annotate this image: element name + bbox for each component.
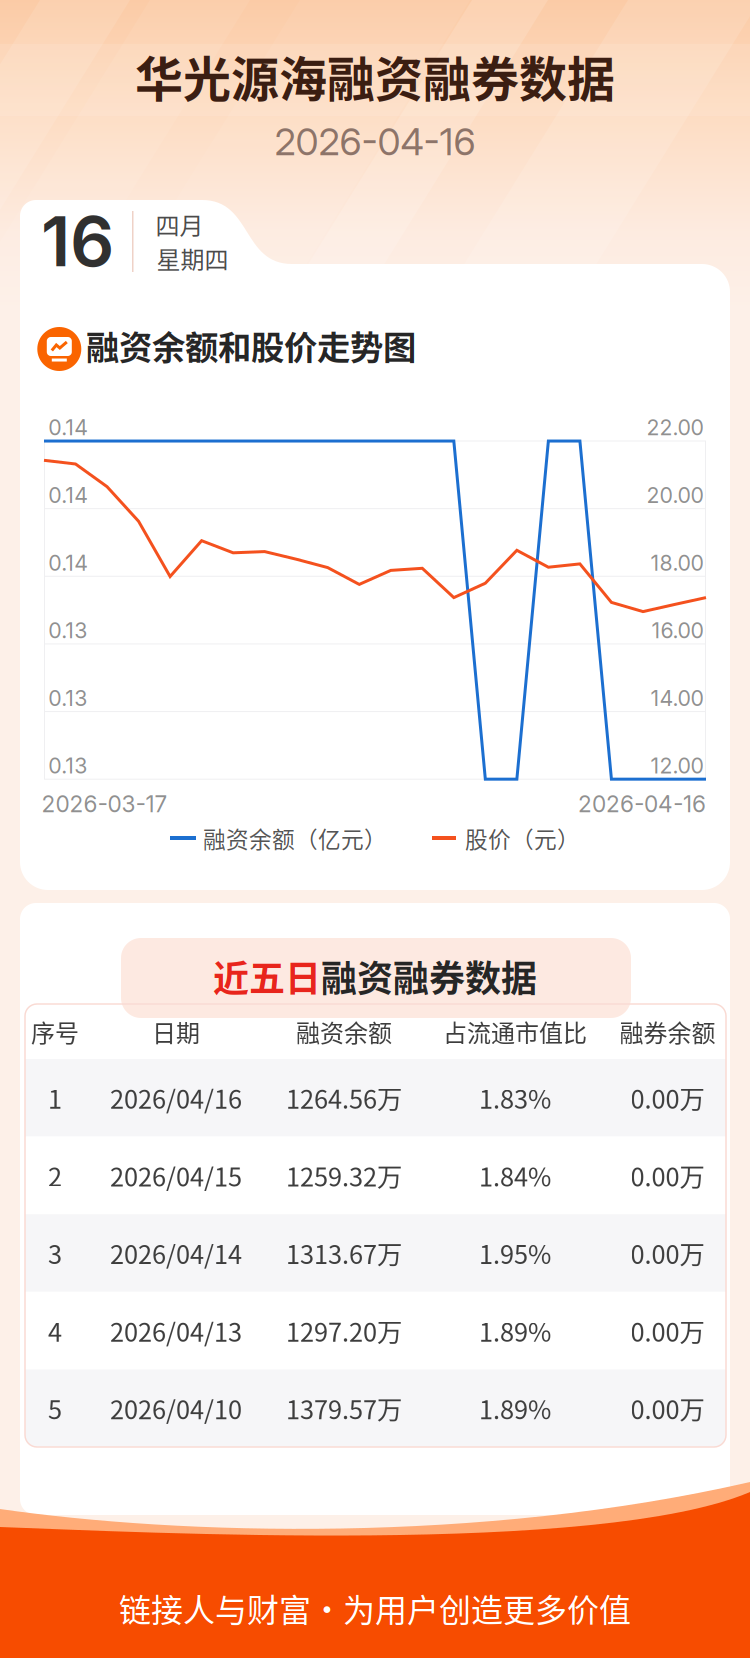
- staticText: 链接人与财富·为用户创造更多价值: [119, 1585, 631, 1631]
- staticText: 1: [48, 1079, 62, 1116]
- staticText: 2026/04/13: [110, 1312, 242, 1349]
- staticText: 2026/04/15: [110, 1157, 242, 1194]
- staticText: 股价（元）: [465, 822, 580, 854]
- staticText: 2026-04-16: [274, 119, 475, 164]
- staticText: 20.00: [646, 482, 703, 508]
- staticText: 0.00万: [630, 1235, 704, 1271]
- staticText: 4: [48, 1312, 62, 1349]
- staticText: 2: [48, 1157, 62, 1194]
- staticText: 华光源海融资融券数据: [135, 41, 615, 110]
- staticText: 1.83%: [479, 1079, 551, 1116]
- staticText: 1.95%: [479, 1235, 551, 1271]
- staticText: 0.13: [48, 753, 87, 779]
- staticText: 1.84%: [479, 1157, 551, 1194]
- staticText: 22.00: [646, 415, 703, 440]
- staticText: 2026/04/14: [110, 1235, 242, 1271]
- staticText: 占流通市值比: [443, 1014, 587, 1049]
- staticText: 2026/04/16: [110, 1079, 242, 1116]
- staticText: 16.00: [651, 618, 703, 643]
- staticText: 14.00: [650, 685, 703, 711]
- staticText: 0.14: [48, 550, 88, 576]
- staticText: 0.00万: [630, 1157, 704, 1194]
- staticText: 1313.67万: [286, 1235, 402, 1271]
- staticText: 四月: [156, 207, 204, 242]
- staticText: 1259.32万: [286, 1157, 402, 1194]
- staticText: 0.13: [48, 618, 87, 643]
- staticText: 序号: [31, 1014, 79, 1049]
- staticText: 18.00: [650, 550, 703, 576]
- staticText: 1.89%: [479, 1390, 551, 1427]
- staticText: 0.00万: [630, 1312, 704, 1349]
- staticText: 0.00万: [630, 1390, 704, 1427]
- staticText: 1379.57万: [286, 1390, 402, 1427]
- staticText: 融资余额（亿元）: [203, 822, 387, 854]
- staticText: 5: [48, 1390, 62, 1427]
- staticText: 1297.20万: [286, 1312, 402, 1349]
- staticText: 融资余额和股价走势图: [86, 321, 416, 369]
- staticText: 2026-04-16: [578, 790, 706, 818]
- staticText: 星期四: [157, 241, 229, 276]
- staticText: 1264.56万: [286, 1079, 402, 1116]
- staticText: 16: [41, 199, 114, 283]
- staticText: 1.89%: [479, 1312, 551, 1349]
- staticText: 0.13: [48, 685, 87, 711]
- staticText: 融券余额: [619, 1014, 715, 1049]
- staticText: 日期: [152, 1014, 200, 1049]
- staticText: 0.14: [48, 415, 88, 440]
- staticText: 近五日: [213, 950, 321, 1002]
- staticText: 融资余额: [296, 1014, 392, 1049]
- staticText: 12.00: [650, 753, 703, 779]
- staticText: 0.00万: [630, 1079, 704, 1116]
- staticText: 0.14: [48, 482, 88, 508]
- staticText: 2026/04/10: [110, 1390, 242, 1427]
- staticText: 3: [48, 1235, 62, 1271]
- staticText: 融资融券数据: [321, 950, 537, 1002]
- staticText: 2026-03-17: [41, 790, 167, 818]
